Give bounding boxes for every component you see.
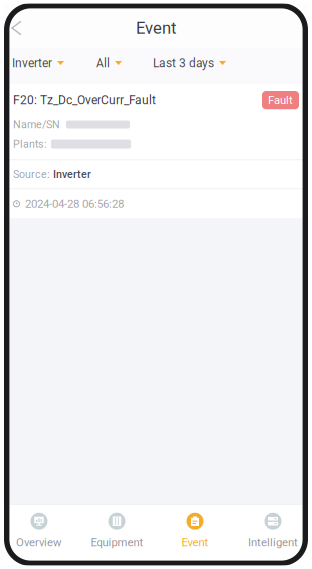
staticText: Name/SN [13, 118, 60, 131]
button[interactable]: All [96, 50, 122, 76]
staticText: Equipment [90, 536, 143, 549]
staticText: Intelligent [248, 536, 298, 549]
staticText: Plants: [13, 138, 47, 150]
staticText: Event [181, 536, 208, 549]
button[interactable]: Intelligent [234, 513, 312, 549]
button[interactable]: Event [156, 513, 234, 549]
staticText: 2024-04-28 06:56:28 [25, 197, 124, 210]
staticText: Last 3 days [153, 56, 214, 70]
button[interactable]: Equipment [78, 513, 156, 549]
staticText: Inverter [53, 168, 91, 180]
staticText: Inverter [12, 56, 52, 70]
staticText: F20: Tz_Dc_OverCurr_Fault [13, 93, 156, 107]
button[interactable]: Last 3 days [153, 50, 226, 76]
button[interactable]: Overview [0, 513, 78, 549]
staticText: Overview [16, 536, 62, 549]
staticText: Fault [268, 93, 293, 107]
staticText: Event [136, 18, 176, 38]
button[interactable]: F20: Tz_Dc_OverCurr_Fault [0, 84, 312, 218]
staticText: Source: [13, 168, 50, 180]
button[interactable]: Back [0, 13, 33, 43]
staticText: All [96, 56, 110, 70]
button[interactable]: Inverter [12, 50, 64, 76]
